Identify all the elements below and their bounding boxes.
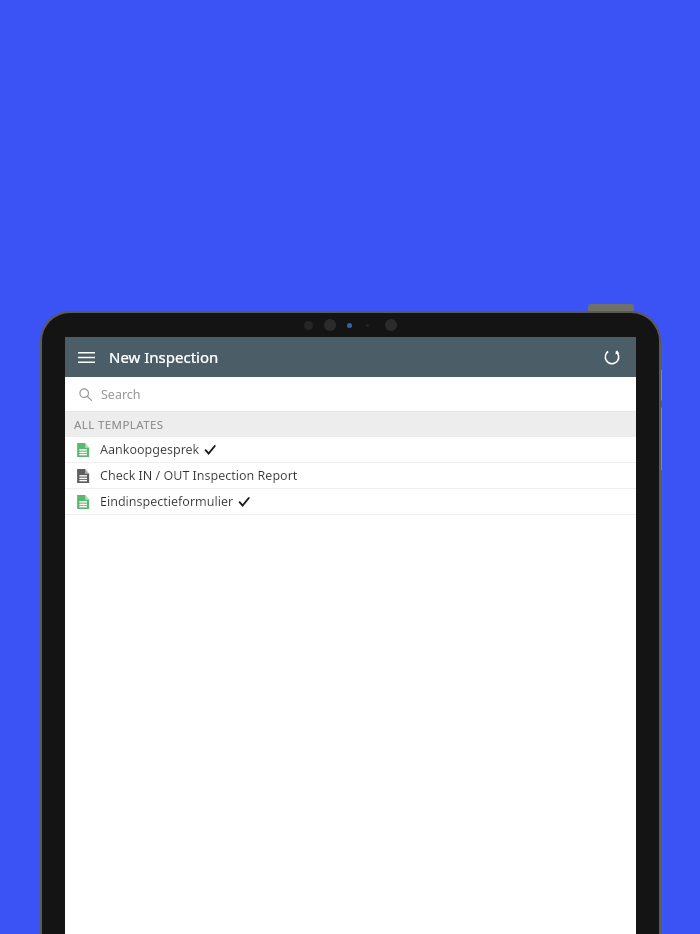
button[interactable]: Refresh — [596, 341, 628, 373]
button[interactable]: Aankoopgesprek — [65, 437, 636, 462]
staticText: Check IN / OUT Inspection Report — [100, 467, 298, 484]
button[interactable]: Open navigation menu — [71, 342, 101, 372]
staticText: Search — [101, 386, 141, 403]
staticText: Eindinspectieformulier — [100, 493, 234, 510]
staticText: ALL TEMPLATES — [74, 417, 164, 433]
staticText: New Inspection — [109, 347, 219, 367]
button[interactable]: Search — [65, 377, 636, 411]
staticText: Aankoopgesprek — [100, 441, 200, 458]
button[interactable]: Eindinspectieformulier — [65, 489, 636, 514]
button[interactable]: Check IN / OUT Inspection Report — [65, 463, 636, 488]
